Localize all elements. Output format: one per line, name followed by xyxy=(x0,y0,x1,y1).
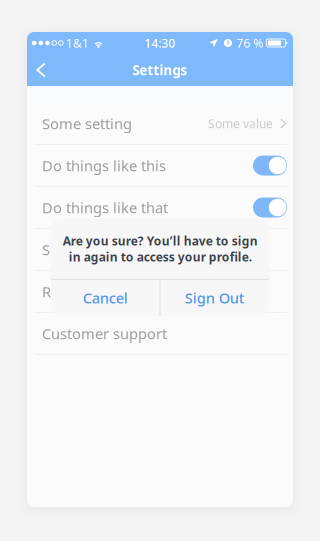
button[interactable]: Some setting xyxy=(27,103,293,144)
button[interactable]: Sign out xyxy=(27,229,293,270)
button[interactable]: Sign Out xyxy=(160,280,269,316)
button[interactable]: Back xyxy=(28,54,54,86)
button[interactable]: Cancel xyxy=(51,280,159,316)
staticText: Sign out xyxy=(42,240,99,259)
staticText: Customer support xyxy=(42,324,167,343)
button[interactable]: Do things like that xyxy=(27,187,293,228)
staticText: Settings xyxy=(132,61,187,79)
staticText: Do things like this xyxy=(42,156,166,175)
staticText: 76 % xyxy=(236,35,263,51)
staticText: Cancel xyxy=(83,288,128,307)
staticText: Rate us xyxy=(42,282,92,301)
staticText: 14:30 xyxy=(144,35,175,51)
button[interactable]: Rate us xyxy=(27,271,293,312)
staticText: 1&1 xyxy=(66,35,89,51)
staticText: Do things like that xyxy=(42,198,168,217)
staticText: Some value xyxy=(208,115,273,131)
staticText: Are you sure? You’ll have to sign in aga… xyxy=(62,233,257,265)
staticText: Some setting xyxy=(42,114,132,133)
button[interactable]: Do things like this xyxy=(27,145,293,186)
button[interactable]: Customer support xyxy=(27,313,293,354)
staticText: Sign Out xyxy=(185,288,245,307)
